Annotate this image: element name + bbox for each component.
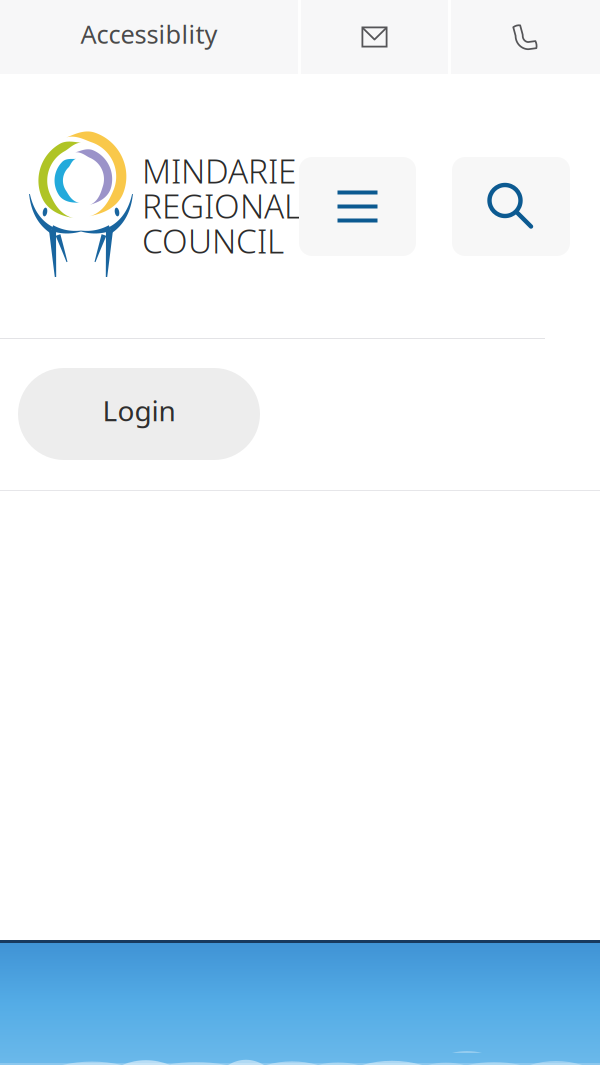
staticText: MINDARIE [142, 148, 296, 193]
staticText: COUNCIL [142, 218, 284, 263]
button[interactable]: Email [301, 0, 448, 74]
button[interactable]: Phone [451, 0, 600, 74]
staticText: Accessiblity [80, 17, 217, 51]
staticText: Login [102, 392, 175, 429]
button[interactable]: Menu [299, 157, 416, 256]
staticText: REGIONAL [142, 183, 301, 228]
button[interactable]: Accessiblity [0, 0, 298, 74]
button[interactable]: Login [18, 368, 260, 460]
button[interactable]: Search [452, 157, 570, 256]
